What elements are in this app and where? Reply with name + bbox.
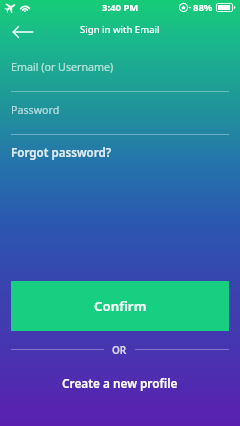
button[interactable]: Forgot password?	[11, 142, 112, 164]
staticText: Email (or Username)	[11, 60, 114, 75]
button[interactable]: Create a new profile	[0, 371, 240, 395]
button[interactable]: Email (or Username)	[0, 60, 240, 92]
button[interactable]: Password	[0, 103, 240, 135]
staticText: Create a new profile	[62, 375, 178, 391]
staticText: Password	[11, 103, 60, 118]
staticText: Forgot password?	[11, 145, 112, 161]
staticText: 88%	[193, 1, 213, 14]
staticText: Confirm	[94, 297, 147, 315]
staticText: 3:40 PM	[102, 1, 139, 14]
button[interactable]: Back	[6, 20, 40, 43]
button[interactable]: Confirm	[11, 281, 229, 331]
staticText: Sign in with Email	[80, 23, 160, 36]
staticText: OR	[112, 343, 127, 357]
